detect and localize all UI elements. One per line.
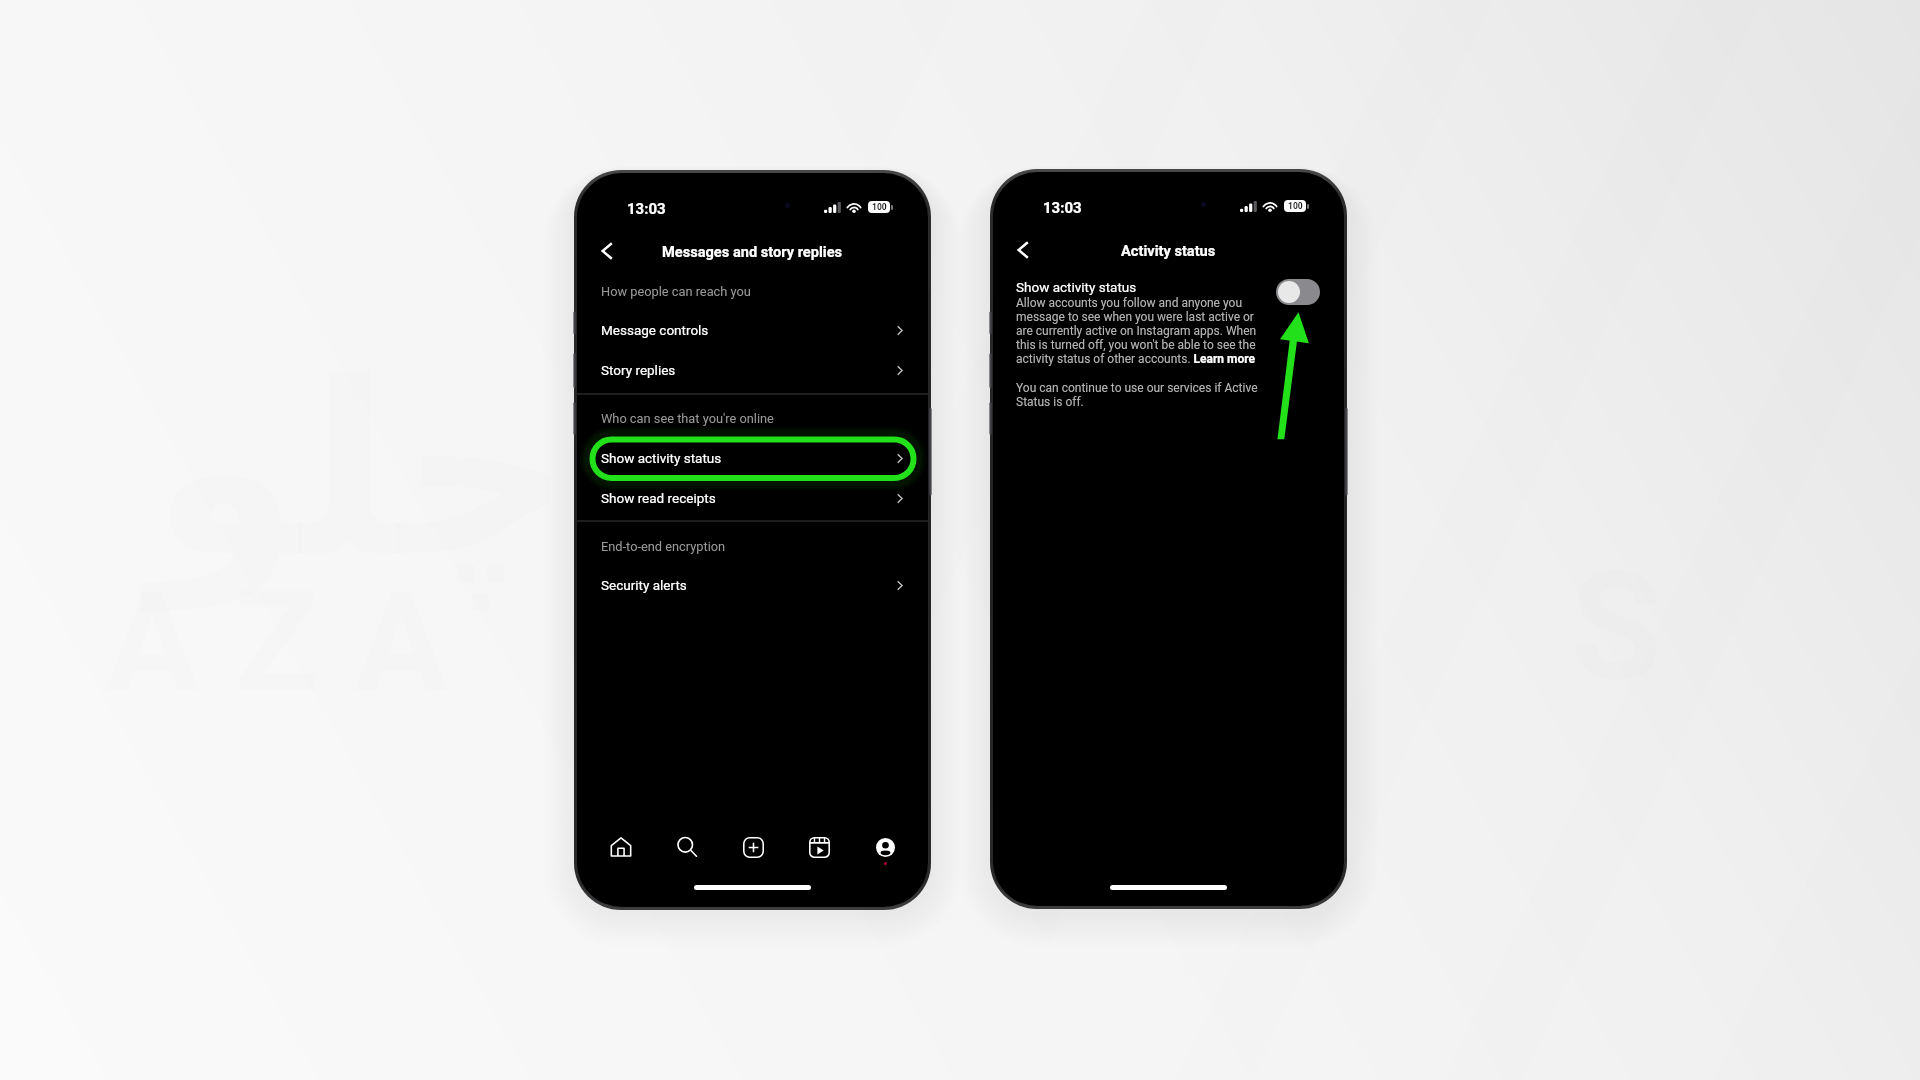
staticText: 100 <box>1288 201 1303 211</box>
button[interactable]: Show activity status toggle <box>1276 279 1320 305</box>
staticText: How people can reach you <box>601 284 751 299</box>
staticText: 13:03 <box>627 200 666 218</box>
staticText: 13:03 <box>1043 199 1082 217</box>
staticText: Show read receipts <box>601 490 716 506</box>
staticText: You can continue to use our services if … <box>1016 381 1266 409</box>
staticText: 100 <box>872 202 887 212</box>
staticText: Show activity status <box>601 450 722 466</box>
staticText: Allow accounts you follow and anyone you… <box>1016 296 1266 366</box>
staticText: Activity status <box>1121 242 1216 259</box>
button[interactable]: Story replies <box>577 353 928 387</box>
staticText: Show activity status <box>1016 279 1137 295</box>
button[interactable]: Search <box>670 830 704 864</box>
button[interactable]: Show read receipts <box>577 481 928 515</box>
staticText: Security alerts <box>601 577 687 593</box>
button[interactable]: Create <box>736 830 770 864</box>
button[interactable]: Back <box>592 236 622 266</box>
button[interactable]: Learn more <box>1194 351 1258 366</box>
button[interactable]: Security alerts <box>577 568 928 602</box>
button[interactable]: Back <box>1008 235 1038 265</box>
button[interactable]: Show activity status <box>577 441 928 475</box>
staticText: End-to-end encryption <box>601 539 726 554</box>
staticText: Story replies <box>601 362 676 378</box>
button[interactable]: Message controls <box>577 313 928 347</box>
button[interactable]: Home <box>604 830 638 864</box>
staticText: Who can see that you're online <box>601 411 774 426</box>
staticText: Messages and story replies <box>662 243 843 260</box>
button[interactable]: Reels <box>802 830 836 864</box>
staticText: Message controls <box>601 322 709 338</box>
button[interactable]: Profile <box>868 830 902 864</box>
